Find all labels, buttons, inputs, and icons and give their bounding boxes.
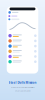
staticText: Transform your workflow with	[10, 86, 34, 89]
button[interactable]	[7, 59, 38, 64]
button[interactable]	[7, 54, 38, 59]
staticText: Steel Dolls Mission	[8, 80, 36, 84]
staticText: smart automation	[14, 89, 30, 92]
button[interactable]	[7, 38, 38, 43]
button[interactable]	[7, 43, 38, 49]
button[interactable]	[7, 49, 38, 54]
button[interactable]	[7, 33, 38, 38]
